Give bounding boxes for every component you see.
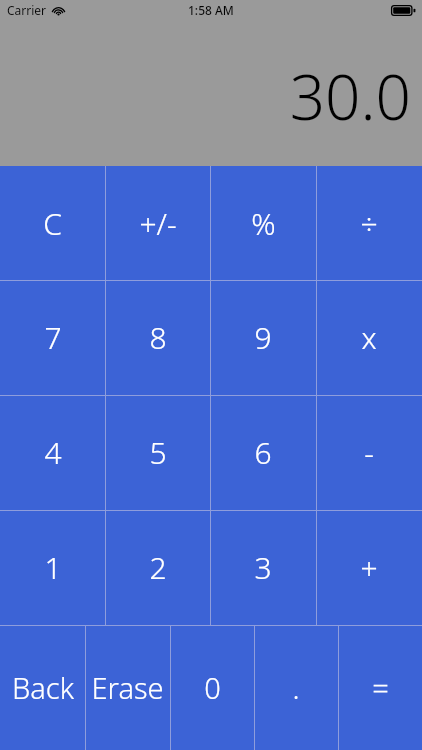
staticText: 7	[44, 317, 62, 358]
button[interactable]: =	[338, 625, 422, 750]
button[interactable]: 6	[210, 395, 316, 510]
button[interactable]: 5	[105, 395, 210, 510]
staticText: Erase	[91, 668, 164, 707]
staticText: 1	[44, 547, 62, 588]
staticText: 30.0	[289, 54, 411, 138]
staticText: ÷	[360, 203, 378, 244]
staticText: -	[364, 432, 374, 473]
button[interactable]: 7	[0, 280, 105, 395]
staticText: 2	[149, 547, 167, 588]
button[interactable]: .	[254, 625, 338, 750]
staticText: 1:58 AM	[188, 2, 234, 18]
button[interactable]: +	[316, 510, 422, 625]
button[interactable]: Erase	[85, 625, 170, 750]
staticText: 0	[204, 668, 221, 707]
staticText: =	[372, 668, 389, 707]
button[interactable]: +/-	[105, 166, 210, 280]
staticText: 4	[44, 432, 62, 473]
staticText: +	[360, 547, 378, 588]
staticText: %	[251, 203, 276, 244]
staticText: C	[43, 203, 62, 244]
staticText: x	[361, 317, 377, 358]
button[interactable]: 0	[170, 625, 254, 750]
button[interactable]: 2	[105, 510, 210, 625]
button[interactable]: 1	[0, 510, 105, 625]
button[interactable]: 8	[105, 280, 210, 395]
staticText: 8	[149, 317, 167, 358]
button[interactable]: C	[0, 166, 105, 280]
button[interactable]: x	[316, 280, 422, 395]
staticText: 6	[254, 432, 272, 473]
staticText: Back	[12, 668, 74, 707]
staticText: Carrier	[7, 2, 47, 18]
staticText: 5	[149, 432, 167, 473]
button[interactable]: Back	[0, 625, 85, 750]
button[interactable]: %	[210, 166, 316, 280]
button[interactable]: 3	[210, 510, 316, 625]
staticText: .	[292, 668, 300, 707]
staticText: 3	[254, 547, 272, 588]
button[interactable]: 4	[0, 395, 105, 510]
staticText: 9	[254, 317, 272, 358]
button[interactable]: -	[316, 395, 422, 510]
button[interactable]: ÷	[316, 166, 422, 280]
staticText: +/-	[139, 203, 177, 244]
button[interactable]: 9	[210, 280, 316, 395]
